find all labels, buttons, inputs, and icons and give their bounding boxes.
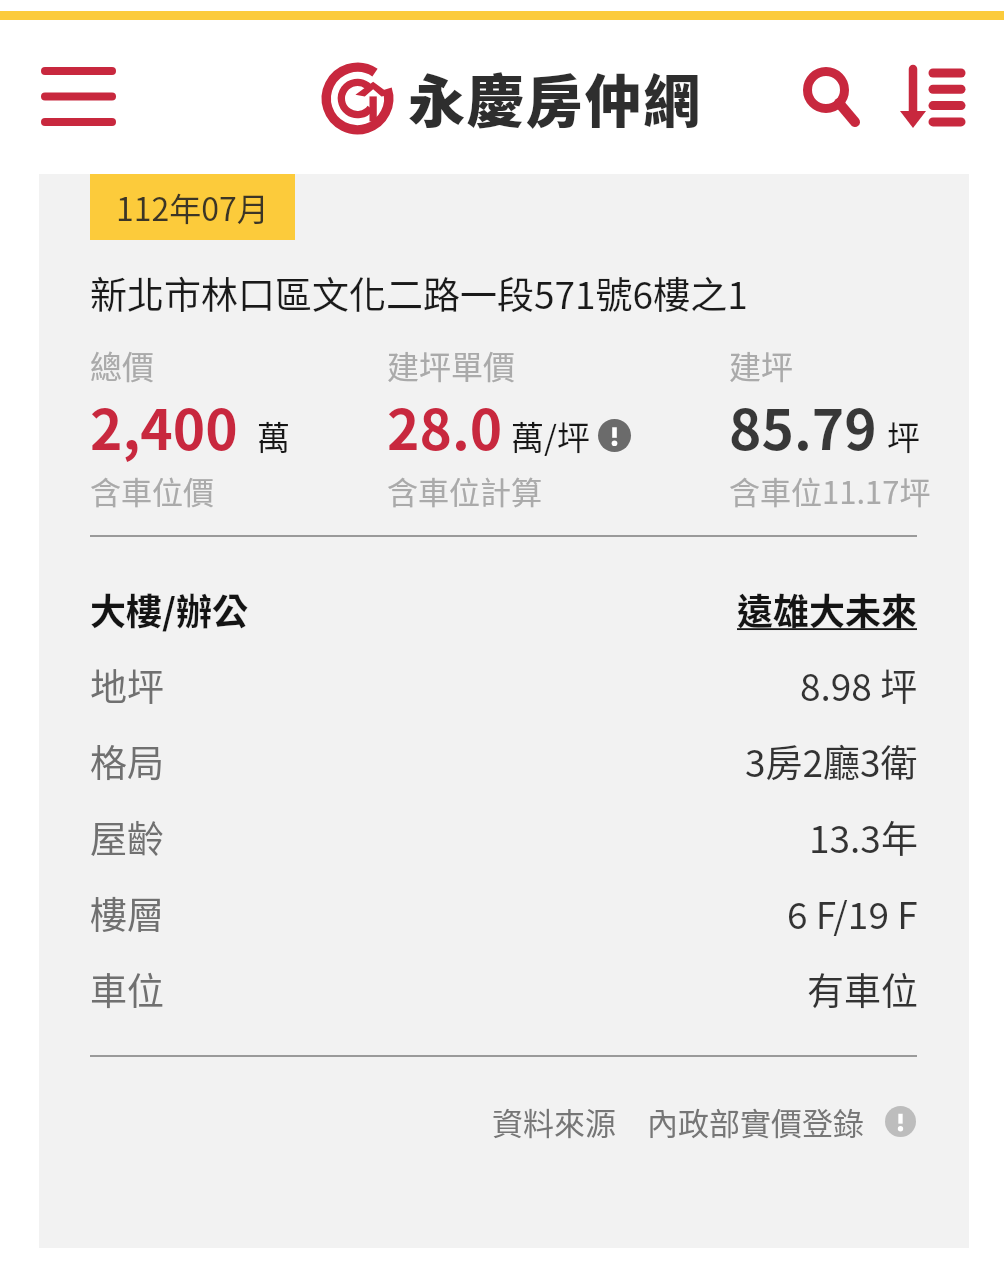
- staticText: 含車位11.17坪: [729, 468, 931, 513]
- staticText: 含車位價: [90, 468, 214, 513]
- staticText: 樓層: [90, 886, 164, 940]
- staticText: 含車位計算: [387, 468, 542, 513]
- button[interactable]: 車位: [90, 951, 918, 1027]
- button[interactable]: 地坪: [90, 647, 918, 723]
- staticText: 總價: [90, 342, 155, 388]
- staticText: 建坪單價: [387, 342, 516, 388]
- staticText: 遠雄大未來: [737, 583, 918, 635]
- staticText: 建坪: [729, 342, 794, 388]
- button[interactable]: 112年07月: [39, 174, 969, 1248]
- staticText: 萬: [257, 412, 290, 460]
- staticText: 85.79: [729, 386, 877, 466]
- staticText: 大樓/辦公: [90, 583, 248, 635]
- button[interactable]: 大樓/辦公: [90, 571, 918, 647]
- staticText: 2,400: [90, 386, 238, 466]
- staticText: 永慶房仲網: [408, 56, 702, 139]
- staticText: 28.0: [387, 386, 503, 466]
- button[interactable]: Search: [792, 56, 872, 136]
- staticText: 地坪: [90, 658, 164, 712]
- staticText: 有車位: [807, 962, 918, 1016]
- staticText: 13.3年: [809, 810, 918, 864]
- staticText: 車位: [90, 962, 164, 1016]
- button[interactable]: Sort: [890, 56, 975, 141]
- button[interactable]: 永慶房仲網: [320, 56, 702, 140]
- staticText: 屋齡: [90, 810, 164, 864]
- button[interactable]: 樓層: [90, 875, 918, 951]
- staticText: 3房2廳3衛: [745, 734, 918, 788]
- staticText: 112年07月: [116, 184, 269, 230]
- staticText: 格局: [90, 734, 164, 788]
- button[interactable]: 格局: [90, 723, 918, 799]
- button[interactable]: Menu: [26, 53, 131, 141]
- staticText: 坪: [887, 412, 920, 460]
- staticText: 6 F/19 F: [787, 886, 918, 940]
- staticText: 新北市林口區文化二路一段571號6樓之1: [90, 266, 748, 320]
- staticText: 資料來源 內政部實價登錄: [492, 1099, 864, 1144]
- button[interactable]: 屋齡: [90, 799, 918, 875]
- staticText: 萬/坪: [511, 412, 590, 460]
- staticText: 8.98 坪: [800, 658, 918, 712]
